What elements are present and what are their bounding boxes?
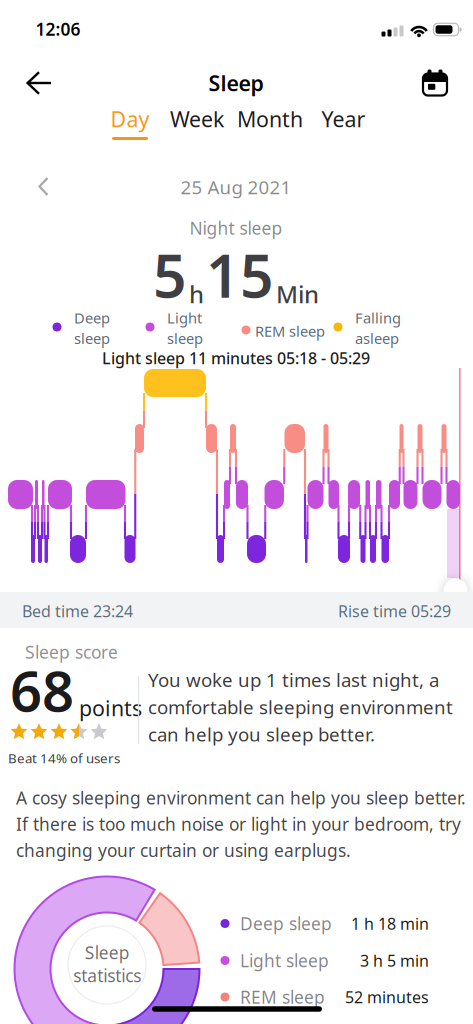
staticText: Year xyxy=(321,105,365,133)
staticText: Light sleep 11 minutes 05:18 - 05:29 xyxy=(102,347,370,369)
staticText: 12:06 xyxy=(35,17,80,40)
staticText: Sleep score xyxy=(25,640,118,663)
staticText: Day xyxy=(110,105,149,133)
button[interactable]: Day xyxy=(102,104,158,134)
staticText: 15 xyxy=(206,236,274,314)
staticText: Bed time 23:24 xyxy=(22,600,133,622)
button[interactable]: Month xyxy=(233,104,307,134)
button[interactable]: Back xyxy=(17,61,61,105)
button[interactable]: Year xyxy=(315,104,371,134)
button[interactable]: Previous day xyxy=(23,166,63,206)
staticText: Week xyxy=(170,105,224,133)
staticText: 3 h 5 min xyxy=(360,950,429,971)
button[interactable]: Week xyxy=(166,104,228,134)
staticText: Light sleep xyxy=(167,308,203,348)
staticText: Deep sleep xyxy=(240,912,332,935)
staticText: Sleep statistics xyxy=(73,941,141,987)
staticText: You woke up 1 times last night, a comfor… xyxy=(148,667,453,747)
staticText: 1 h 18 min xyxy=(351,913,429,934)
staticText: h xyxy=(189,278,204,310)
staticText: Light sleep xyxy=(240,949,329,972)
staticText: REM sleep xyxy=(255,321,325,341)
button[interactable]: Calendar xyxy=(413,61,457,105)
staticText: REM sleep xyxy=(240,985,325,1008)
staticText: Night sleep xyxy=(189,216,282,239)
staticText: Rise time 05:29 xyxy=(338,600,451,622)
staticText: 5 xyxy=(153,236,187,314)
staticText: Beat 14% of users xyxy=(8,749,120,767)
staticText: 52 minutes xyxy=(345,986,429,1008)
staticText: A cosy sleeping environment can help you… xyxy=(16,786,466,862)
staticText: 25 Aug 2021 xyxy=(180,175,291,199)
staticText: Falling asleep xyxy=(355,308,401,348)
staticText: points xyxy=(79,694,142,722)
staticText: Min xyxy=(276,278,319,310)
staticText: Deep sleep xyxy=(74,308,110,348)
staticText: Month xyxy=(237,105,303,133)
staticText: 68 xyxy=(10,653,74,727)
staticText: Sleep xyxy=(208,69,263,97)
